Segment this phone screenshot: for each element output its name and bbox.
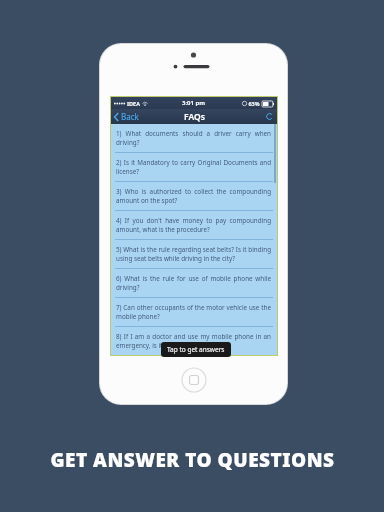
staticText: Tap to get answers (167, 345, 225, 354)
button[interactable]: 5) What is the rule regarding seat belts… (111, 240, 277, 268)
staticText: 8) If I am a doctor and use my mobile ph… (116, 332, 271, 350)
staticText: Back (119, 111, 139, 122)
button[interactable]: Back (111, 109, 145, 124)
button[interactable]: 6) What is the rule for use of mobile ph… (111, 269, 277, 297)
button[interactable]: Home (181, 367, 207, 393)
staticText: 3:01 pm (182, 99, 206, 107)
button[interactable]: Tap to get answers (161, 342, 231, 357)
button[interactable]: Refresh (262, 110, 277, 123)
staticText: 6) What is the rule for use of mobile ph… (116, 274, 271, 292)
staticText: IDEA (127, 100, 140, 107)
staticText: 7) Can other occupants of the motor vehi… (116, 303, 271, 321)
staticText: 1) What documents should a driver carry … (116, 129, 271, 147)
button[interactable]: 4) If you don't have money to pay compou… (111, 211, 277, 239)
staticText: 3) Who is authorized to collect the comp… (116, 187, 271, 205)
button[interactable]: 1) What documents should a driver carry … (111, 124, 277, 152)
staticText: 63% (247, 100, 260, 107)
staticText: GET ANSWER TO QUESTIONS (50, 447, 335, 473)
staticText: FAQs (184, 111, 205, 123)
button[interactable]: 2) Is it Mandatory to carry Original Doc… (111, 153, 277, 181)
staticText: 4) If you don't have money to pay compou… (116, 216, 271, 234)
staticText: 5) What is the rule regarding seat belts… (116, 245, 271, 263)
button[interactable]: 7) Can other occupants of the motor vehi… (111, 298, 277, 326)
staticText: 2) Is it Mandatory to carry Original Doc… (116, 158, 271, 176)
button[interactable]: 8) If I am a doctor and use my mobile ph… (111, 327, 277, 355)
button[interactable]: 3) Who is authorized to collect the comp… (111, 182, 277, 210)
